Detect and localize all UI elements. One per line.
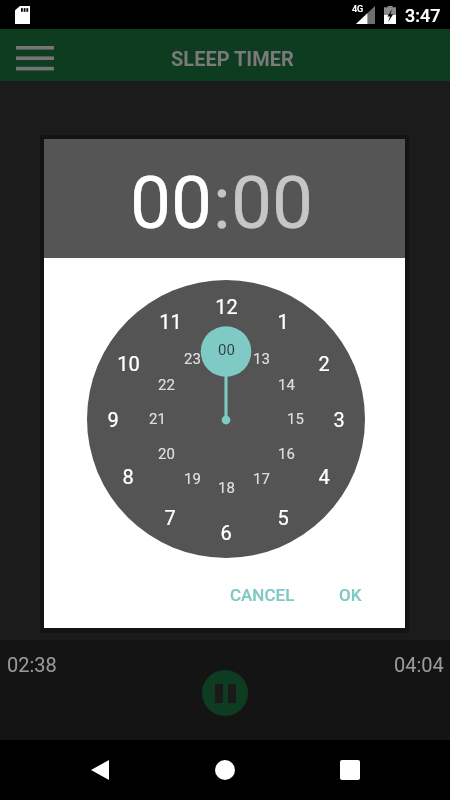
button[interactable]: 23 xyxy=(170,343,214,375)
staticText: 11 xyxy=(159,310,182,333)
staticText: 4G xyxy=(352,4,364,15)
staticText: 2 xyxy=(318,352,330,375)
staticText: 22 xyxy=(158,376,175,394)
button[interactable]: 00 xyxy=(231,160,314,246)
staticText: 7 xyxy=(164,506,176,529)
staticText: OK xyxy=(339,585,362,605)
button[interactable]: 11 xyxy=(148,305,192,337)
button[interactable]: Back xyxy=(70,740,130,800)
button[interactable]: 00 xyxy=(204,334,248,366)
staticText: 12 xyxy=(215,295,238,318)
button[interactable]: 17 xyxy=(239,463,283,495)
button[interactable]: 15 xyxy=(273,403,317,435)
staticText: 23 xyxy=(184,350,201,368)
staticText: 13 xyxy=(253,350,270,368)
staticText: 02:38 xyxy=(7,653,57,676)
staticText: 19 xyxy=(184,470,201,488)
button[interactable]: 00 xyxy=(130,160,213,246)
button[interactable]: Pause xyxy=(202,670,248,716)
staticText: 5 xyxy=(277,506,289,529)
staticText: 16 xyxy=(278,445,295,463)
staticText: SLEEP TIMER xyxy=(171,47,294,70)
button[interactable]: OK xyxy=(327,577,374,613)
staticText: 10 xyxy=(117,352,140,375)
button[interactable]: 13 xyxy=(239,343,283,375)
button[interactable]: 20 xyxy=(144,438,188,470)
staticText: 1 xyxy=(277,310,289,333)
button[interactable]: 14 xyxy=(264,369,308,401)
button[interactable]: 9 xyxy=(91,403,135,435)
staticText: 18 xyxy=(218,479,235,497)
staticText: 9 xyxy=(107,408,119,431)
staticText: 20 xyxy=(158,445,175,463)
button[interactable]: 2 xyxy=(302,347,346,379)
staticText: 3 xyxy=(333,408,345,431)
button[interactable]: 1 xyxy=(261,305,305,337)
button[interactable]: 10 xyxy=(106,347,150,379)
button[interactable]: 6 xyxy=(204,516,248,548)
button[interactable]: 19 xyxy=(170,463,214,495)
staticText: 15 xyxy=(287,410,304,428)
button[interactable]: CANCEL xyxy=(218,577,307,613)
button[interactable]: 21 xyxy=(135,403,179,435)
button[interactable]: 8 xyxy=(106,460,150,492)
button[interactable]: 4 xyxy=(302,460,346,492)
button[interactable]: 16 xyxy=(264,438,308,470)
staticText: : xyxy=(213,160,231,246)
staticText: 4 xyxy=(318,465,330,488)
button[interactable]: 7 xyxy=(148,501,192,533)
staticText: 21 xyxy=(149,410,166,428)
staticText: 04:04 xyxy=(394,653,444,676)
staticText: 17 xyxy=(253,470,270,488)
button[interactable]: 22 xyxy=(144,369,188,401)
button[interactable]: Home xyxy=(195,740,255,800)
button[interactable]: 18 xyxy=(204,472,248,504)
staticText: 6 xyxy=(220,521,232,544)
button[interactable]: 3 xyxy=(317,403,361,435)
staticText: 3:47 xyxy=(405,5,441,26)
button[interactable]: 12 xyxy=(204,290,248,322)
button[interactable]: Open navigation menu xyxy=(4,29,66,81)
staticText: 14 xyxy=(278,376,295,394)
staticText: 00 xyxy=(218,341,235,359)
button[interactable]: Recent apps xyxy=(320,740,380,800)
staticText: CANCEL xyxy=(230,585,295,605)
button[interactable]: 5 xyxy=(261,501,305,533)
staticText: 8 xyxy=(122,465,134,488)
